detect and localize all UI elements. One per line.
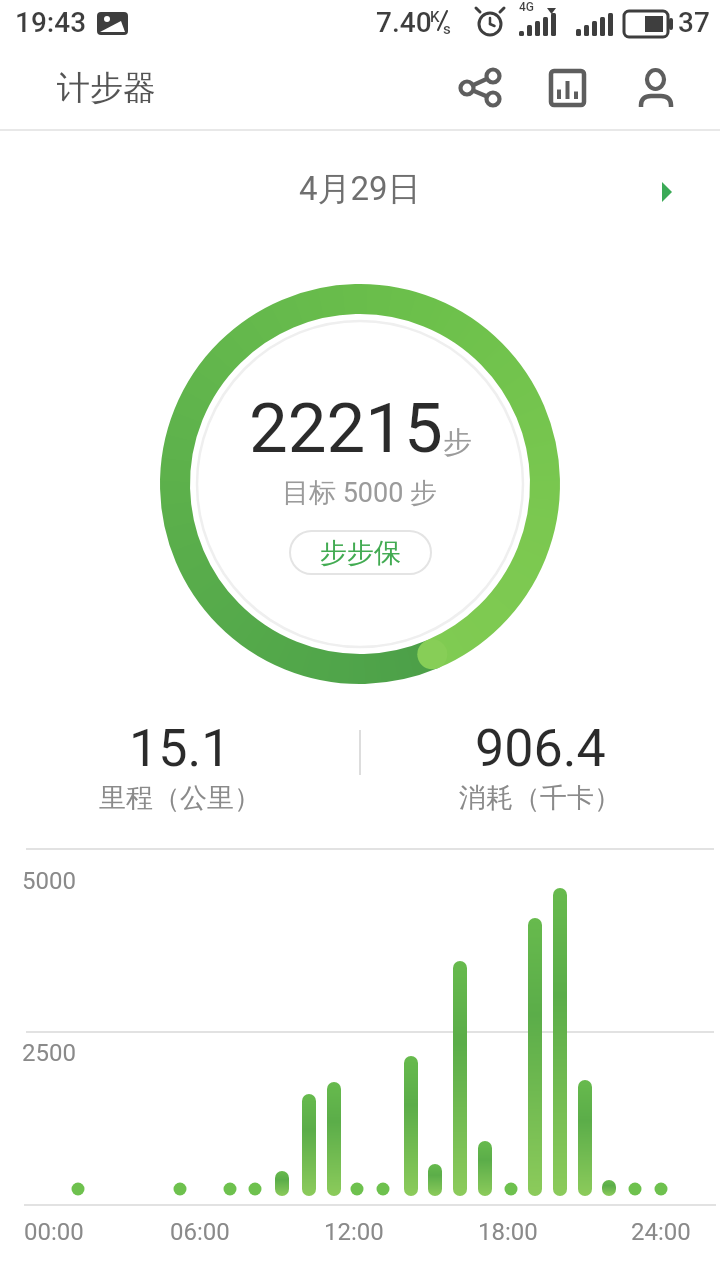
staticText: 22215	[249, 388, 443, 469]
button[interactable]	[544, 65, 590, 111]
button[interactable]	[0, 148, 720, 220]
staticText: 06:00	[170, 1218, 230, 1246]
button[interactable]	[636, 65, 682, 111]
staticText: 目标 5000 步	[282, 476, 438, 510]
staticText: 4G	[519, 0, 534, 14]
staticText: 消耗（千卡）	[459, 781, 621, 815]
button[interactable]	[452, 65, 498, 111]
staticText: 15.1	[129, 718, 231, 779]
staticText: 37	[678, 6, 710, 39]
staticText: 19:43	[15, 6, 87, 39]
staticText: 步步保	[320, 536, 401, 570]
staticText: 里程（公里）	[99, 781, 261, 815]
staticText: s	[443, 20, 451, 38]
button[interactable]: 步步保	[289, 530, 432, 575]
staticText: 步	[443, 424, 472, 461]
staticText: 7.40	[376, 6, 432, 39]
staticText: 12:00	[324, 1218, 384, 1246]
staticText: 18:00	[478, 1218, 538, 1246]
staticText: 4月29日	[299, 168, 421, 210]
staticText: 计步器	[57, 67, 156, 109]
staticText: K	[430, 8, 440, 26]
staticText: 5000	[22, 867, 76, 895]
staticText: 906.4	[475, 718, 606, 779]
staticText: 00:00	[24, 1218, 84, 1246]
staticText: 2500	[22, 1039, 76, 1067]
staticText: 24:00	[631, 1218, 691, 1246]
